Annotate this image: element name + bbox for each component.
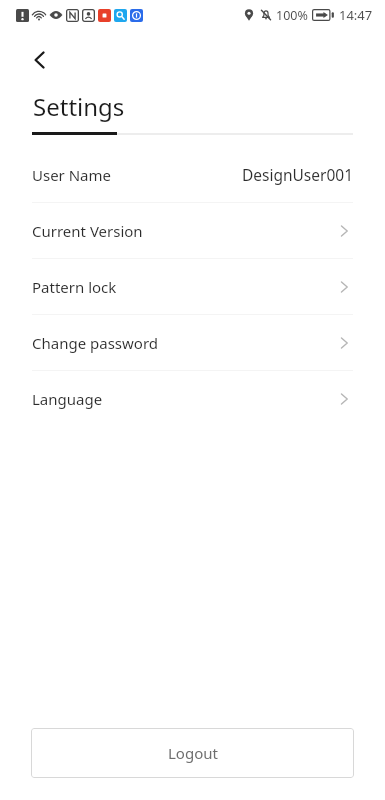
- staticText: Current Version: [32, 221, 143, 241]
- button[interactable]: Logout: [31, 728, 354, 778]
- button[interactable]: Current Version: [0, 203, 385, 258]
- button[interactable]: User Name: [0, 147, 385, 202]
- staticText: Settings: [33, 90, 125, 123]
- button[interactable]: Pattern lock: [0, 259, 385, 314]
- button[interactable]: Back: [20, 40, 60, 80]
- staticText: 100%: [276, 7, 308, 24]
- staticText: Change password: [32, 333, 159, 353]
- button[interactable]: Change password: [0, 315, 385, 370]
- staticText: 14:47: [339, 6, 373, 24]
- staticText: Pattern lock: [32, 277, 117, 297]
- button[interactable]: Language: [0, 371, 385, 426]
- staticText: DesignUser001: [241, 164, 353, 185]
- staticText: Logout: [168, 743, 218, 763]
- staticText: User Name: [32, 165, 112, 185]
- staticText: Language: [32, 389, 103, 409]
